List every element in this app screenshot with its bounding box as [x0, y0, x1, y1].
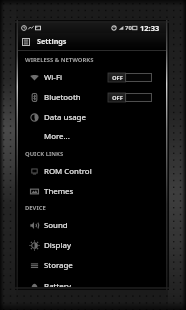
button[interactable]: Bluetooth switch, off — [108, 93, 152, 102]
staticText: QUICK LINKS — [25, 150, 64, 158]
staticText: DEVICE — [25, 204, 46, 212]
staticText: WIRELESS & NETWORKS — [25, 56, 94, 64]
button[interactable]: Settings — [18, 33, 166, 51]
staticText: Settings — [37, 36, 67, 46]
staticText: OFF — [112, 74, 123, 82]
button[interactable]: Wi-Fi switch, off — [108, 73, 152, 82]
staticText: 70 — [125, 24, 132, 32]
button[interactable]: More... — [18, 126, 166, 146]
staticText: Sound — [44, 220, 68, 231]
staticText: Data usage — [44, 112, 86, 123]
button[interactable]: ROM Control — [18, 161, 166, 181]
staticText: ROM Control — [44, 166, 92, 177]
staticText: Bluetooth — [44, 92, 81, 103]
button[interactable]: Bluetooth — [18, 87, 166, 107]
staticText: Display — [44, 240, 71, 251]
button[interactable]: Wi-Fi — [18, 67, 166, 87]
staticText: OFF — [112, 94, 123, 102]
staticText: Themes — [44, 186, 74, 197]
button[interactable]: Storage — [18, 255, 166, 275]
staticText: Storage — [44, 260, 73, 271]
staticText: More... — [44, 131, 70, 142]
button[interactable]: Data usage — [18, 107, 166, 127]
button[interactable]: Themes — [18, 181, 166, 201]
staticText: 12:33 — [140, 23, 160, 33]
staticText: Battery — [44, 281, 71, 287]
button[interactable]: Display — [18, 235, 166, 255]
button[interactable]: Battery — [18, 276, 166, 287]
button[interactable]: Sound — [18, 215, 166, 235]
staticText: Wi-Fi — [44, 72, 63, 83]
